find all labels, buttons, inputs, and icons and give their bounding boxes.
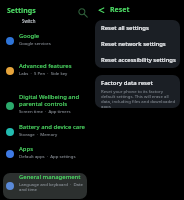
staticText: Labs · S Pen · Side key: [19, 70, 68, 76]
staticText: Reset: [110, 5, 130, 15]
staticText: Storage · Memory: [19, 131, 58, 137]
staticText: Switch: [22, 18, 36, 24]
button[interactable]: Factory data reset: [95, 75, 180, 108]
staticText: Reset network settings: [101, 40, 166, 48]
button[interactable]: Reset all settings: [95, 20, 180, 36]
staticText: Reset accessibility settings: [101, 56, 176, 64]
staticText: Google services: [19, 40, 51, 46]
button[interactable]: General management: [3, 173, 87, 199]
staticText: Advanced features: [19, 62, 72, 70]
button[interactable]: Google: [3, 32, 87, 48]
staticText: Screen time · App timers: [19, 108, 71, 114]
button[interactable]: Advanced features: [3, 62, 87, 78]
staticText: Settings: [7, 6, 36, 16]
staticText: Battery and device care: [19, 123, 85, 131]
staticText: Default apps · App settings: [19, 153, 76, 159]
staticText: Language and keyboard · Date and time: [19, 181, 83, 193]
staticText: Google: [19, 32, 40, 40]
staticText: Digital Wellbeing and parental controls: [19, 93, 80, 108]
staticText: Apps: [19, 145, 34, 153]
button[interactable]: Reset network settings: [95, 36, 180, 52]
button[interactable]: Search: [76, 6, 89, 19]
staticText: Reset your phone to its factory default …: [101, 88, 177, 108]
button[interactable]: Reset accessibility settings: [95, 52, 180, 68]
button[interactable]: Apps: [3, 145, 87, 161]
button[interactable]: Digital Wellbeing and parental controls: [3, 93, 87, 119]
staticText: Reset all settings: [101, 24, 149, 32]
staticText: Factory data reset: [101, 79, 153, 87]
button[interactable]: Battery and device care: [3, 123, 87, 139]
staticText: General management: [19, 173, 81, 181]
button[interactable]: Back: [95, 4, 108, 16]
